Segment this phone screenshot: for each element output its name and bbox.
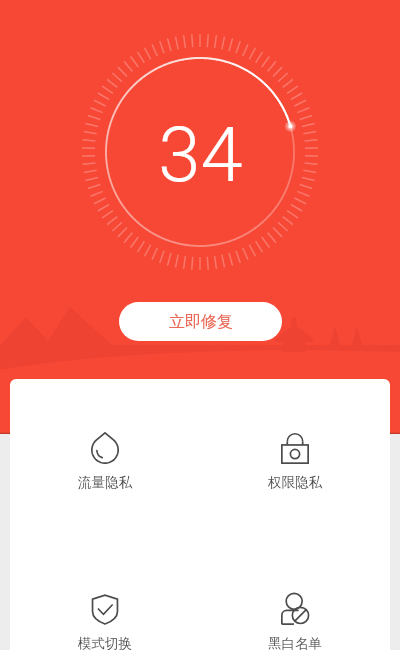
staticText: 黑白名单 (268, 635, 322, 650)
staticText: 立即修复 (169, 312, 233, 332)
button[interactable]: 流量隐私 (10, 432, 200, 491)
staticText: 模式切换 (78, 635, 132, 650)
staticText: 34 (158, 110, 243, 199)
button[interactable]: 黑白名单 (200, 593, 390, 650)
staticText: 权限隐私 (268, 474, 322, 491)
button[interactable]: 权限隐私 (200, 432, 390, 491)
button[interactable]: 模式切换 (10, 593, 200, 650)
staticText: 流量隐私 (78, 474, 132, 491)
button[interactable]: 立即修复 (119, 302, 282, 341)
